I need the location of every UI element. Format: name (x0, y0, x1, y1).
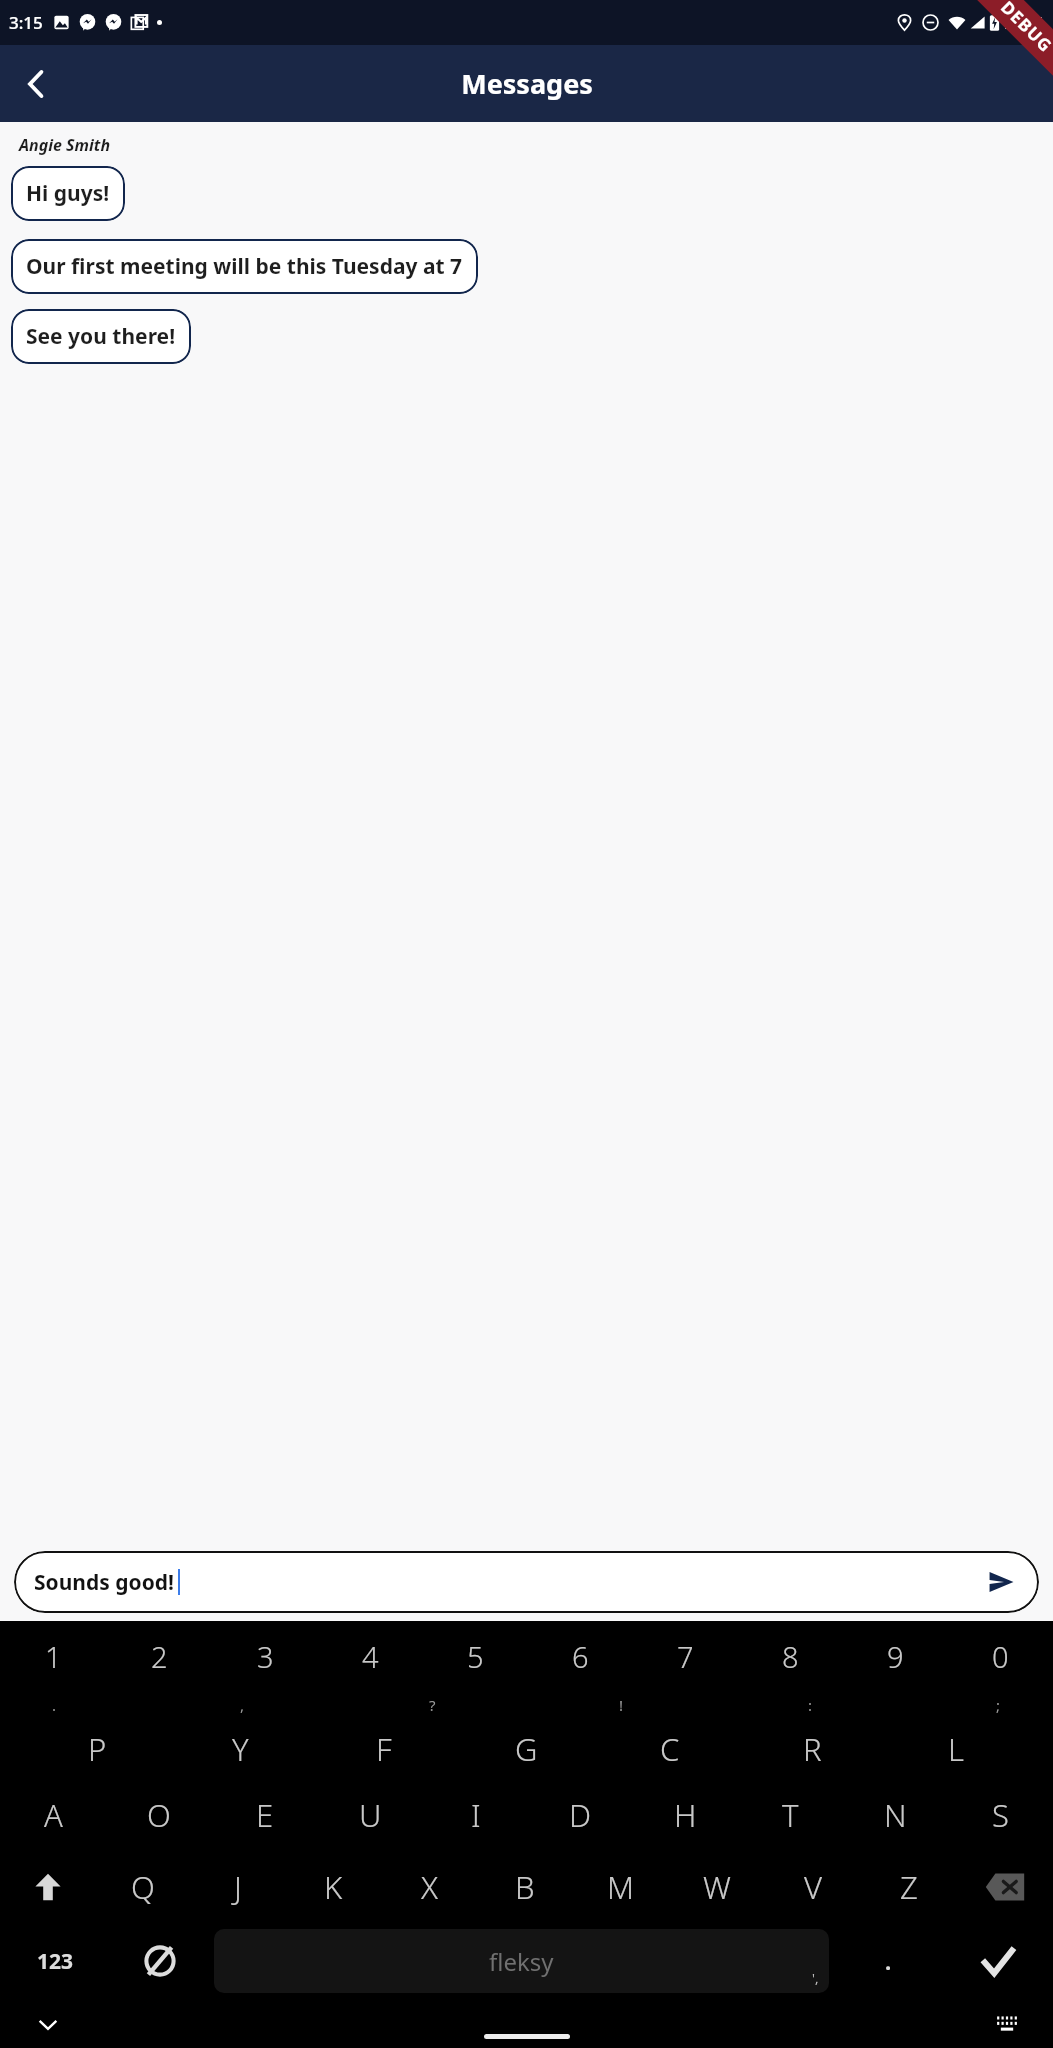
button[interactable]: N (843, 1779, 948, 1851)
staticText: S (992, 1794, 1009, 1836)
staticText: 8 (782, 1637, 799, 1676)
staticText: N (884, 1794, 907, 1836)
staticText: 1 (45, 1637, 62, 1676)
button[interactable]: C (598, 1725, 741, 1773)
button[interactable]: 2 (106, 1621, 212, 1691)
button[interactable]: Emoji off (110, 1929, 210, 1993)
staticText: 4 (362, 1637, 379, 1676)
button[interactable]: 9 (843, 1621, 948, 1691)
button[interactable]: J (190, 1851, 285, 1923)
staticText: : (808, 1695, 813, 1715)
button[interactable]: 5 (423, 1621, 528, 1691)
button[interactable]: R (741, 1725, 884, 1773)
staticText: A (44, 1794, 63, 1836)
button[interactable]: Our first meeting will be this Tuesday a… (11, 239, 478, 294)
button[interactable]: U (318, 1779, 423, 1851)
staticText: DEBUG (996, 0, 1053, 57)
button[interactable]: X (381, 1851, 477, 1923)
button[interactable]: M (573, 1851, 669, 1923)
staticText: . (885, 1946, 892, 1976)
staticText: 0 (992, 1637, 1009, 1676)
button[interactable]: 8 (738, 1621, 843, 1691)
button[interactable]: B (477, 1851, 573, 1923)
button[interactable]: 4 (318, 1621, 423, 1691)
button[interactable]: 0 (948, 1621, 1053, 1691)
staticText: 123 (37, 1947, 74, 1976)
staticText: Q (131, 1866, 155, 1908)
button[interactable]: V (765, 1851, 861, 1923)
staticText: L (948, 1728, 964, 1770)
staticText: I (471, 1794, 481, 1836)
button[interactable]: Send (979, 1560, 1023, 1604)
staticText: H (674, 1794, 697, 1836)
button[interactable]: 1 (0, 1621, 106, 1691)
staticText: J (234, 1866, 242, 1908)
button[interactable]: W (669, 1851, 765, 1923)
button[interactable]: E (212, 1779, 318, 1851)
staticText: Our first meeting will be this Tuesday a… (26, 252, 463, 281)
staticText: 2 (151, 1637, 168, 1676)
staticText: 5 (467, 1637, 484, 1676)
staticText: . (52, 1695, 57, 1715)
button[interactable]: S (948, 1779, 1053, 1851)
staticText: R (803, 1728, 822, 1770)
staticText: F (376, 1728, 392, 1770)
button[interactable]: Q (95, 1851, 190, 1923)
staticText: 3 (257, 1637, 274, 1676)
button[interactable]: Hide keyboard (26, 2002, 70, 2046)
staticText: G (515, 1728, 538, 1770)
staticText: D (569, 1794, 592, 1836)
button[interactable]: P (26, 1725, 169, 1773)
staticText: Sounds good! (34, 1568, 174, 1597)
staticText: 6 (572, 1637, 589, 1676)
button[interactable]: F (312, 1725, 455, 1773)
button[interactable]: . (833, 1929, 943, 1993)
staticText: See you there! (26, 322, 176, 351)
button[interactable]: Back (8, 56, 64, 112)
staticText: 7 (677, 1637, 694, 1676)
button[interactable]: Y (169, 1725, 312, 1773)
button[interactable]: Enter (943, 1929, 1053, 1993)
button[interactable]: G (455, 1725, 598, 1773)
button[interactable]: Backspace (957, 1851, 1053, 1923)
button[interactable]: H (633, 1779, 738, 1851)
button[interactable]: L (884, 1725, 1027, 1773)
staticText: 3:15 (9, 11, 43, 34)
staticText: K (324, 1866, 343, 1908)
button[interactable]: fleksy (214, 1929, 829, 1993)
staticText: X (421, 1866, 438, 1908)
button[interactable]: D (528, 1779, 633, 1851)
button[interactable]: Z (861, 1851, 957, 1923)
button[interactable]: See you there! (11, 309, 191, 364)
staticText: ! (619, 1695, 624, 1715)
staticText: ? (429, 1695, 436, 1715)
staticText: ', (812, 1969, 819, 1987)
button[interactable]: Sounds good! (14, 1551, 1039, 1613)
button[interactable]: K (285, 1851, 381, 1923)
button[interactable]: T (738, 1779, 843, 1851)
button[interactable]: Hi guys! (11, 166, 125, 221)
button[interactable]: A (0, 1779, 106, 1851)
staticText: V (804, 1866, 823, 1908)
staticText: O (147, 1794, 171, 1836)
button[interactable]: 3 (212, 1621, 318, 1691)
button[interactable]: 123 (0, 1929, 110, 1993)
staticText: Messages (461, 65, 593, 102)
button[interactable]: Shift (0, 1851, 95, 1923)
staticText: W (703, 1866, 731, 1908)
button[interactable]: 6 (528, 1621, 633, 1691)
staticText: fleksy (489, 1945, 554, 1978)
staticText: Z (900, 1866, 918, 1908)
staticText: C (660, 1728, 680, 1770)
button[interactable]: Switch keyboard (985, 2002, 1029, 2046)
staticText: U (359, 1794, 382, 1836)
staticText: M (607, 1866, 635, 1908)
staticText: Hi guys! (26, 179, 110, 208)
staticText: E (256, 1794, 274, 1836)
button[interactable]: 7 (633, 1621, 738, 1691)
button[interactable]: I (423, 1779, 528, 1851)
button[interactable]: O (106, 1779, 212, 1851)
staticText: , (240, 1695, 245, 1715)
staticText: Y (232, 1728, 249, 1770)
staticText: B (515, 1866, 535, 1908)
